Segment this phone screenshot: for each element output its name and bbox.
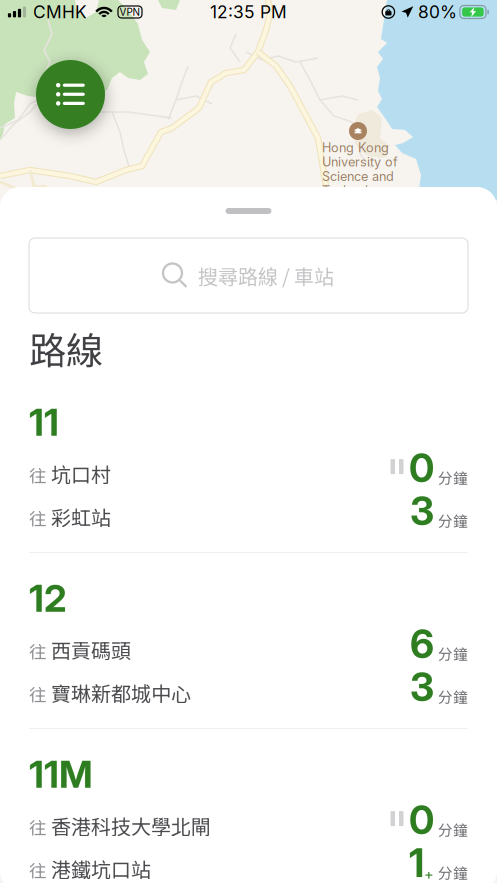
staticText: 0 [409,797,434,844]
button[interactable]: 往 [0,488,497,531]
staticText: 分鐘 [438,643,468,664]
button[interactable]: 12 [0,553,497,621]
staticText: 往 [29,857,46,883]
button[interactable]: 11 [0,377,497,445]
staticText: Technology [322,183,391,198]
button[interactable]: 搜尋路線 / 車站 [0,238,497,313]
staticText: 西貢碼頭 [51,635,131,664]
staticText: 往 [29,638,46,664]
staticText: University of [322,154,398,170]
staticText: 往 [29,681,46,707]
staticText: Science and [322,169,394,184]
staticText: 分鐘 [438,510,468,531]
staticText: 1 [409,840,424,883]
staticText: 3 [410,664,434,711]
staticText: 分鐘 [438,467,468,488]
staticText: 往 [29,505,46,531]
staticText: 分鐘 [438,862,468,883]
staticText: 坑口村 [51,459,111,488]
staticText: 香港科技大學北閘 [51,811,211,840]
staticText: 11M [29,751,93,797]
staticText: 80% [418,1,457,22]
staticText: 分鐘 [438,686,468,707]
button[interactable]: Route list [36,60,105,129]
button[interactable]: 往 [0,621,497,664]
staticText: 11 [29,399,59,445]
staticText: Hong Kong [322,140,389,155]
staticText: 往 [29,814,46,840]
button[interactable]: 往 [0,797,497,840]
staticText: 寶琳新都城中心 [51,678,191,707]
staticText: VPN [119,6,140,18]
button[interactable]: 往 [0,840,497,883]
button[interactable]: 11M [0,729,497,797]
staticText: 分鐘 [438,819,468,840]
staticText: 6 [410,621,434,668]
staticText: 3 [410,488,434,535]
staticText: CMHK [33,1,87,22]
staticText: 往 [29,462,46,488]
staticText: 彩虹站 [51,502,111,531]
staticText: 12 [29,575,67,621]
button[interactable]: 往 [0,445,497,488]
staticText: 搜尋路線 / 車站 [198,261,334,290]
staticText: 港鐵坑口站 [51,854,151,883]
staticText: + [424,865,434,883]
staticText: 12:35 PM [210,1,287,22]
staticText: 0 [409,445,434,492]
button[interactable]: 往 [0,664,497,707]
staticText: 路線 [29,321,103,375]
